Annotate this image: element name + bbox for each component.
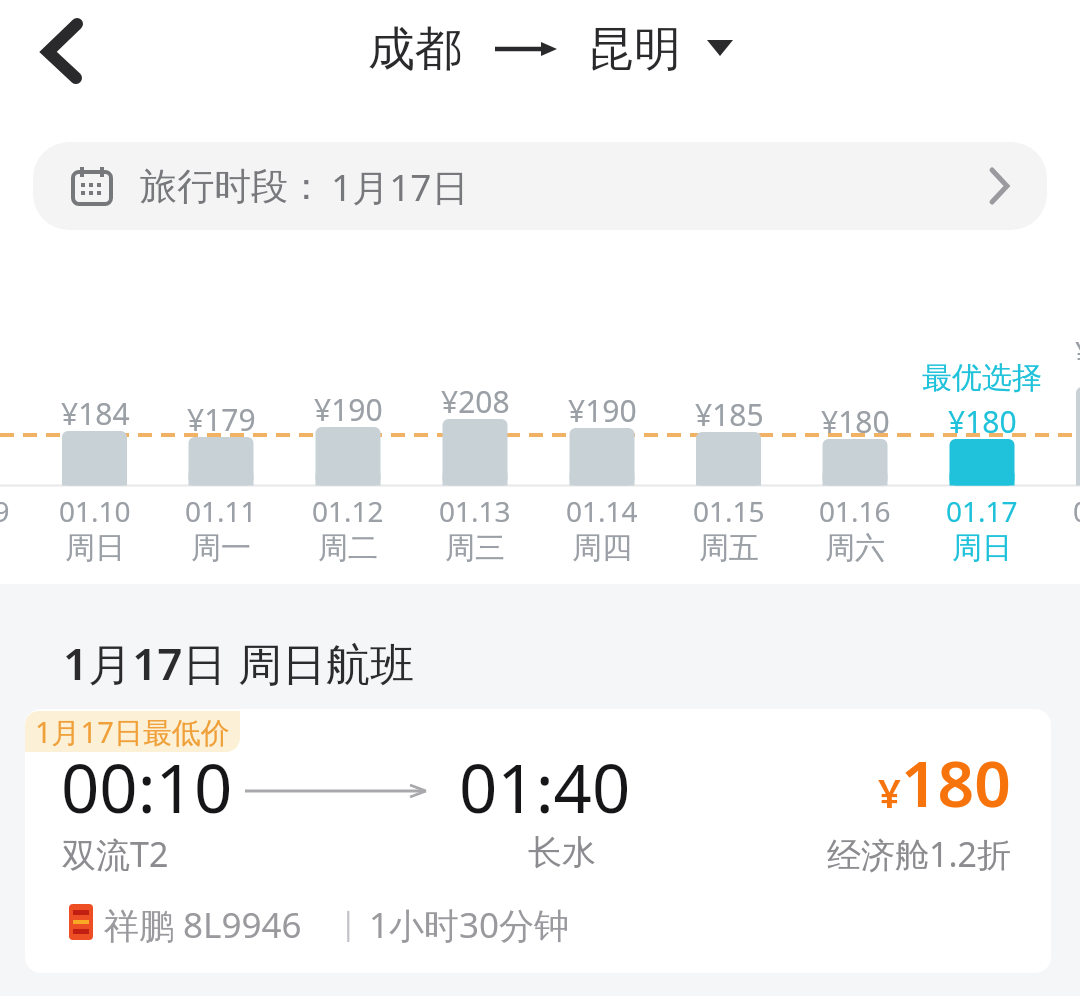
staticText: 01:40 bbox=[459, 741, 631, 832]
staticText: ｜ bbox=[333, 904, 364, 943]
button[interactable] bbox=[707, 40, 733, 58]
staticText: ¥185 bbox=[695, 394, 764, 435]
staticText: 01.13 bbox=[439, 492, 511, 530]
staticText: 旅行时段： bbox=[140, 163, 325, 210]
staticText: 周五 bbox=[699, 529, 759, 567]
staticText: 01.10 bbox=[59, 492, 131, 530]
staticText: 01.16 bbox=[819, 492, 891, 530]
staticText: ¥ bbox=[878, 765, 901, 819]
button[interactable] bbox=[539, 470, 665, 580]
button[interactable]: 成都 bbox=[368, 20, 462, 79]
staticText: 1月17日 周日航班 bbox=[63, 633, 414, 693]
staticText: ¥180 bbox=[948, 401, 1017, 442]
staticText: 1月17日 bbox=[331, 161, 469, 212]
staticText: ¥208 bbox=[441, 381, 510, 422]
staticText: 双流T2 bbox=[62, 831, 169, 877]
staticText: 祥鹏 8L9946 bbox=[104, 901, 302, 949]
staticText: 周一 bbox=[191, 529, 251, 567]
button[interactable] bbox=[285, 470, 411, 580]
button[interactable] bbox=[1046, 470, 1080, 580]
staticText: 1小时30分钟 bbox=[369, 901, 570, 949]
staticText: 180 bbox=[901, 739, 1011, 826]
staticText: 长水 bbox=[528, 831, 596, 874]
button[interactable] bbox=[158, 470, 284, 580]
staticText: 01.17 bbox=[946, 492, 1018, 530]
staticText: 01.11 bbox=[185, 492, 257, 530]
button[interactable] bbox=[919, 470, 1045, 580]
staticText: ¥238 bbox=[1075, 332, 1080, 373]
staticText: ¥184 bbox=[61, 393, 130, 434]
staticText: 00:10 bbox=[61, 741, 233, 832]
staticText: ¥190 bbox=[314, 389, 383, 430]
staticText: 01.12 bbox=[312, 492, 384, 530]
staticText: 周四 bbox=[572, 529, 632, 567]
staticText: 最优选择 bbox=[922, 359, 1042, 397]
button[interactable] bbox=[666, 470, 792, 580]
button[interactable] bbox=[32, 470, 158, 580]
staticText: 周三 bbox=[445, 529, 505, 567]
button[interactable] bbox=[0, 470, 37, 580]
staticText: 经济舱1.2折 bbox=[827, 831, 1012, 877]
staticText: 01.14 bbox=[566, 492, 638, 530]
staticText: 1月17日最低价 bbox=[35, 712, 230, 752]
button[interactable] bbox=[792, 470, 918, 580]
staticText: 01.18 bbox=[1073, 492, 1080, 530]
staticText: ¥179 bbox=[187, 399, 256, 440]
button[interactable] bbox=[30, 14, 102, 90]
staticText: 01.15 bbox=[693, 492, 765, 530]
staticText: 周二 bbox=[318, 529, 378, 567]
staticText: ¥180 bbox=[821, 401, 890, 442]
staticText: ¥190 bbox=[568, 390, 637, 431]
staticText: 周日 bbox=[65, 529, 125, 567]
staticText: 周六 bbox=[825, 529, 885, 567]
button[interactable]: 1月17日最低价 bbox=[25, 709, 1051, 973]
button[interactable] bbox=[412, 470, 538, 580]
staticText: 周日 bbox=[952, 529, 1012, 567]
button[interactable]: 旅行时段： bbox=[33, 142, 1047, 230]
staticText: 01.09 bbox=[0, 492, 10, 530]
button[interactable]: 昆明 bbox=[587, 20, 681, 79]
